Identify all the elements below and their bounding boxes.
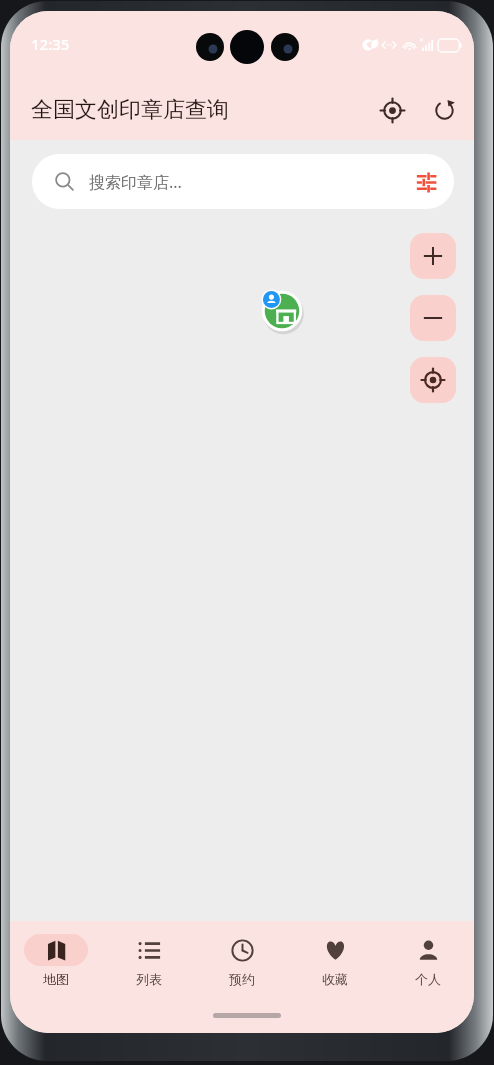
button[interactable]: Filter	[404, 160, 448, 204]
button[interactable]: Locate	[370, 88, 414, 132]
button[interactable]: 收藏	[288, 934, 381, 987]
button[interactable]: Zoom out	[410, 295, 456, 341]
staticText: 地图	[43, 971, 69, 987]
button[interactable]: Zoom in	[410, 233, 456, 279]
button[interactable]: 搜索印章店...	[32, 154, 454, 209]
button[interactable]: 预约	[195, 934, 288, 987]
button[interactable]: Stamp store marker	[259, 288, 305, 334]
button[interactable]: My location	[410, 357, 456, 403]
staticText: 列表	[136, 971, 162, 987]
button[interactable]: 地图	[10, 934, 102, 987]
staticText: 收藏	[322, 971, 348, 987]
staticText: 预约	[229, 971, 255, 987]
button[interactable]: Refresh	[422, 88, 466, 132]
staticText: 12:35	[31, 34, 70, 54]
staticText: 全国文创印章店查询	[31, 96, 370, 124]
staticText: 搜索印章店...	[89, 171, 182, 193]
staticText: 个人	[415, 971, 441, 987]
button[interactable]: 个人	[381, 934, 474, 987]
button[interactable]: 列表	[102, 934, 195, 987]
